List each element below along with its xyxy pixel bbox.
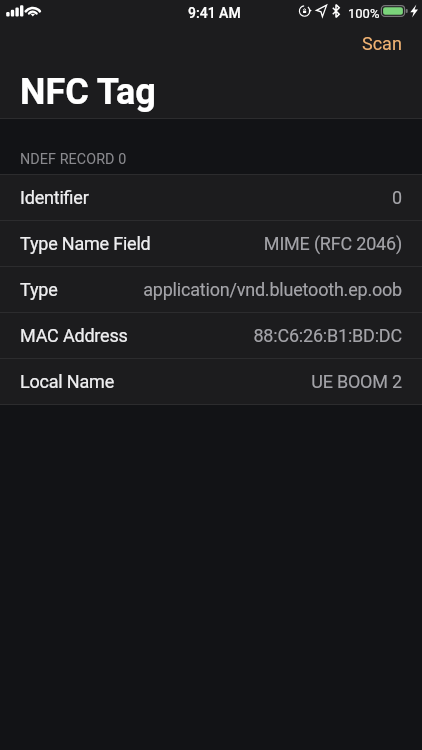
button[interactable]: MAC Address: [0, 313, 422, 358]
staticText: application/vnd.bluetooth.ep.oob: [66, 279, 402, 300]
button[interactable]: Type: [0, 267, 422, 312]
staticText: 0: [97, 187, 402, 208]
staticText: NFC Tag: [20, 71, 156, 113]
staticText: Local Name: [20, 371, 114, 392]
button[interactable]: Scan: [342, 27, 422, 60]
staticText: Type: [20, 279, 58, 300]
staticText: NDEF RECORD 0: [20, 151, 127, 168]
button[interactable]: Local Name: [0, 359, 422, 404]
staticText: 100%: [348, 6, 380, 21]
staticText: 9:41 AM: [188, 5, 241, 21]
staticText: Type Name Field: [20, 233, 151, 254]
staticText: 88:C6:26:B1:BD:DC: [136, 325, 402, 346]
button[interactable]: Type Name Field: [0, 221, 422, 266]
staticText: MIME (RFC 2046): [159, 233, 402, 254]
staticText: UE BOOM 2: [122, 371, 402, 392]
staticText: MAC Address: [20, 325, 128, 346]
staticText: Identifier: [20, 187, 89, 208]
staticText: Scan: [362, 33, 402, 54]
button[interactable]: Identifier: [0, 175, 422, 220]
